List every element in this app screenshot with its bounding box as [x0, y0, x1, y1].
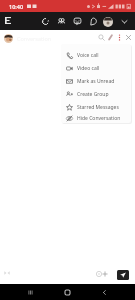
- staticText: Video call: [77, 65, 100, 72]
- button[interactable]: Mark as Unread: [61, 75, 131, 88]
- staticText: Starred Messages: [77, 104, 119, 111]
- button[interactable]: Create Group: [61, 88, 131, 101]
- button[interactable]: More options: [114, 32, 124, 42]
- button[interactable]: Voice call: [61, 49, 131, 62]
- button[interactable]: Attach: [105, 32, 115, 42]
- button[interactable]: Contact avatar: [4, 34, 13, 43]
- button[interactable]: Home: [57, 284, 77, 300]
- button[interactable]: Notifications: [87, 15, 99, 27]
- button[interactable]: Close: [123, 32, 133, 42]
- button[interactable]: Back: [94, 284, 114, 300]
- staticText: Create Group: [77, 91, 109, 98]
- staticText: Mark as Unread: [77, 78, 115, 85]
- button[interactable]: Expand: [118, 15, 130, 27]
- button[interactable]: Attach: [100, 269, 109, 278]
- button[interactable]: Recents: [20, 284, 40, 300]
- button[interactable]: Starred Messages: [61, 101, 131, 114]
- button[interactable]: Send: [117, 270, 129, 280]
- button[interactable]: Keyboard: [4, 270, 10, 276]
- staticText: Hide Conversation: [77, 115, 121, 122]
- staticText: 10:40: [9, 3, 24, 10]
- staticText: Conversation: [17, 35, 52, 42]
- button[interactable]: Messages: [71, 15, 83, 27]
- button[interactable]: Refresh: [39, 15, 51, 27]
- button[interactable]: Emoji: [94, 269, 103, 278]
- button[interactable]: Hide Conversation: [61, 114, 131, 123]
- button[interactable]: Account: [102, 16, 113, 27]
- button[interactable]: Video call: [61, 62, 131, 75]
- button[interactable]: Search: [96, 32, 106, 42]
- button[interactable]: Menu: [2, 14, 14, 26]
- staticText: Voice call: [77, 52, 99, 59]
- button[interactable]: Contacts: [55, 15, 67, 27]
